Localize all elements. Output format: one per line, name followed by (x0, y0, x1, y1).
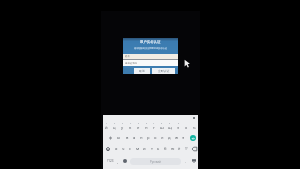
button[interactable]: Enter (187, 132, 198, 143)
staticText: е (137, 125, 140, 131)
staticText: 立即认证 (158, 69, 170, 73)
button[interactable]: ф (107, 132, 115, 143)
button[interactable]: Shift (103, 143, 113, 154)
staticText: р (147, 135, 150, 141)
staticText: д (168, 135, 171, 141)
button[interactable]: 1 (103, 121, 110, 132)
button[interactable]: и (141, 143, 148, 154)
staticText: Русский (150, 160, 161, 164)
button[interactable]: 立即认证 (152, 68, 175, 74)
staticText: о (154, 135, 157, 141)
button[interactable]: ж (173, 132, 180, 143)
staticText: , (117, 159, 119, 164)
button[interactable]: Hide keyboard (189, 154, 198, 168)
staticText: 8 (161, 122, 163, 125)
staticText: г (153, 125, 155, 131)
button[interactable]: 取消 (134, 68, 150, 74)
staticText: я (115, 146, 118, 152)
staticText: т (151, 146, 153, 152)
button[interactable]: 4 (126, 121, 134, 132)
staticText: !? (185, 146, 188, 151)
button[interactable]: я (113, 143, 120, 154)
button[interactable]: 6 (142, 121, 150, 132)
button[interactable]: 姓名 (123, 54, 178, 59)
button[interactable]: Comma (114, 154, 122, 168)
staticText: и (143, 146, 146, 152)
button[interactable]: э (180, 132, 187, 143)
staticText: ж (175, 135, 179, 141)
staticText: ё (178, 146, 181, 152)
staticText: х (185, 125, 188, 131)
button[interactable]: ч (120, 143, 127, 154)
button[interactable]: 0 (174, 121, 182, 132)
staticText: й (105, 125, 108, 131)
button[interactable]: х (182, 121, 190, 132)
staticText: у (121, 125, 124, 131)
button[interactable]: Emoji (121, 154, 129, 168)
button[interactable]: т (148, 143, 155, 154)
staticText: ф (109, 135, 113, 141)
button[interactable]: 身份证号码 (123, 59, 178, 66)
button[interactable]: д (166, 132, 173, 143)
button[interactable]: 8 (158, 121, 166, 132)
staticText: м (136, 146, 140, 152)
other: Pointer (183, 59, 192, 68)
button[interactable]: !? (183, 143, 190, 154)
staticText: 姓名 (125, 55, 130, 58)
staticText: 1 (106, 122, 108, 125)
button[interactable]: 2 (110, 121, 118, 132)
button[interactable]: л (159, 132, 166, 143)
staticText: ю (171, 146, 175, 152)
button[interactable]: м (134, 143, 141, 154)
staticText: 3 (122, 122, 124, 125)
staticText: ш (160, 125, 164, 131)
button[interactable]: с (127, 143, 134, 154)
staticText: 2 (114, 122, 116, 125)
staticText: в (126, 135, 129, 141)
staticText: ч (122, 146, 125, 152)
button[interactable]: а (131, 132, 138, 143)
staticText: ь (157, 146, 160, 152)
staticText: б (164, 146, 167, 152)
button[interactable]: 3 (118, 121, 126, 132)
staticText: 7 (153, 122, 155, 125)
button[interactable]: б (162, 143, 169, 154)
staticText: 取消 (139, 69, 145, 73)
staticText: ц (113, 125, 116, 131)
button[interactable]: в (123, 132, 131, 143)
staticText: 9 (169, 122, 171, 125)
staticText: . (185, 159, 187, 164)
staticText: ъ (193, 125, 196, 131)
staticText: к (129, 125, 132, 131)
staticText: э (182, 135, 185, 141)
staticText: 0 (178, 122, 180, 125)
button[interactable]: More suggestions (192, 116, 196, 120)
button[interactable]: ы (115, 132, 123, 143)
button[interactable]: ю (169, 143, 176, 154)
button[interactable]: 5 (134, 121, 142, 132)
staticText: л (161, 135, 164, 141)
staticText: 6 (146, 122, 148, 125)
staticText: 用户实名认证 (140, 40, 161, 44)
staticText: 4 (130, 122, 132, 125)
staticText: з (177, 125, 180, 131)
button[interactable]: п (138, 132, 145, 143)
staticText: а (133, 135, 136, 141)
button[interactable]: о (152, 132, 159, 143)
button[interactable]: ё (176, 143, 183, 154)
button[interactable]: Backspace (190, 143, 198, 154)
button[interactable]: р (145, 132, 152, 143)
staticText: ?123 (107, 159, 114, 163)
staticText: 根据国家相关法规要求请实名认证 (134, 47, 167, 50)
staticText: с (129, 146, 132, 152)
button[interactable]: ь (155, 143, 162, 154)
button[interactable]: ?123 (104, 154, 117, 168)
button[interactable]: Русский (130, 158, 181, 165)
button[interactable]: 9 (166, 121, 174, 132)
staticText: щ (168, 125, 172, 131)
staticText: 5 (138, 122, 140, 125)
staticText: ы (117, 135, 121, 141)
button[interactable]: ъ (190, 121, 198, 132)
button[interactable]: 7 (150, 121, 158, 132)
